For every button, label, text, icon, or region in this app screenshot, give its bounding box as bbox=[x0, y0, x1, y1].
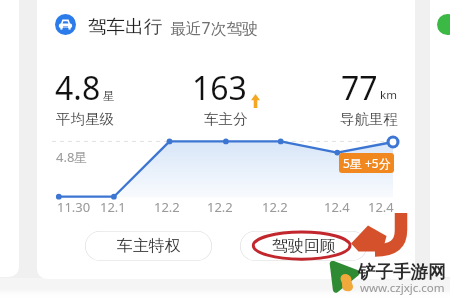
staticText: 平均星级 bbox=[56, 110, 114, 128]
staticText: 驾车出行 bbox=[88, 15, 163, 38]
staticText: 12.2 bbox=[154, 198, 180, 216]
staticText: 铲子手游网 bbox=[358, 261, 446, 283]
staticText: 驾驶回顾 bbox=[272, 236, 336, 256]
staticText: km bbox=[380, 87, 397, 103]
button[interactable]: 车主特权 bbox=[85, 231, 212, 261]
staticText: 12.2 bbox=[262, 198, 288, 216]
staticText: 4.8星 bbox=[56, 148, 88, 166]
other: Logo bbox=[326, 261, 357, 291]
staticText: 12.1 bbox=[100, 198, 126, 216]
staticText: 5星 +5分 bbox=[343, 155, 391, 171]
staticText: 最近7次驾驶 bbox=[170, 17, 259, 39]
staticText: www.czjxjc.com bbox=[360, 280, 445, 296]
staticText: 11.30 bbox=[57, 198, 91, 216]
staticText: 77 bbox=[341, 66, 378, 110]
staticText: 12.4 bbox=[324, 198, 350, 216]
staticText: 车主分 bbox=[204, 110, 248, 128]
staticText: 163 bbox=[192, 66, 247, 110]
button[interactable]: 驾驶回顾 bbox=[240, 231, 367, 261]
staticText: 星 bbox=[103, 89, 115, 103]
staticText: 4.8 bbox=[55, 66, 101, 110]
staticText: 导航里程 bbox=[340, 110, 398, 128]
staticText: 车主特权 bbox=[117, 236, 181, 256]
staticText: 12.4 bbox=[368, 198, 394, 216]
staticText: 12.2 bbox=[207, 198, 233, 216]
